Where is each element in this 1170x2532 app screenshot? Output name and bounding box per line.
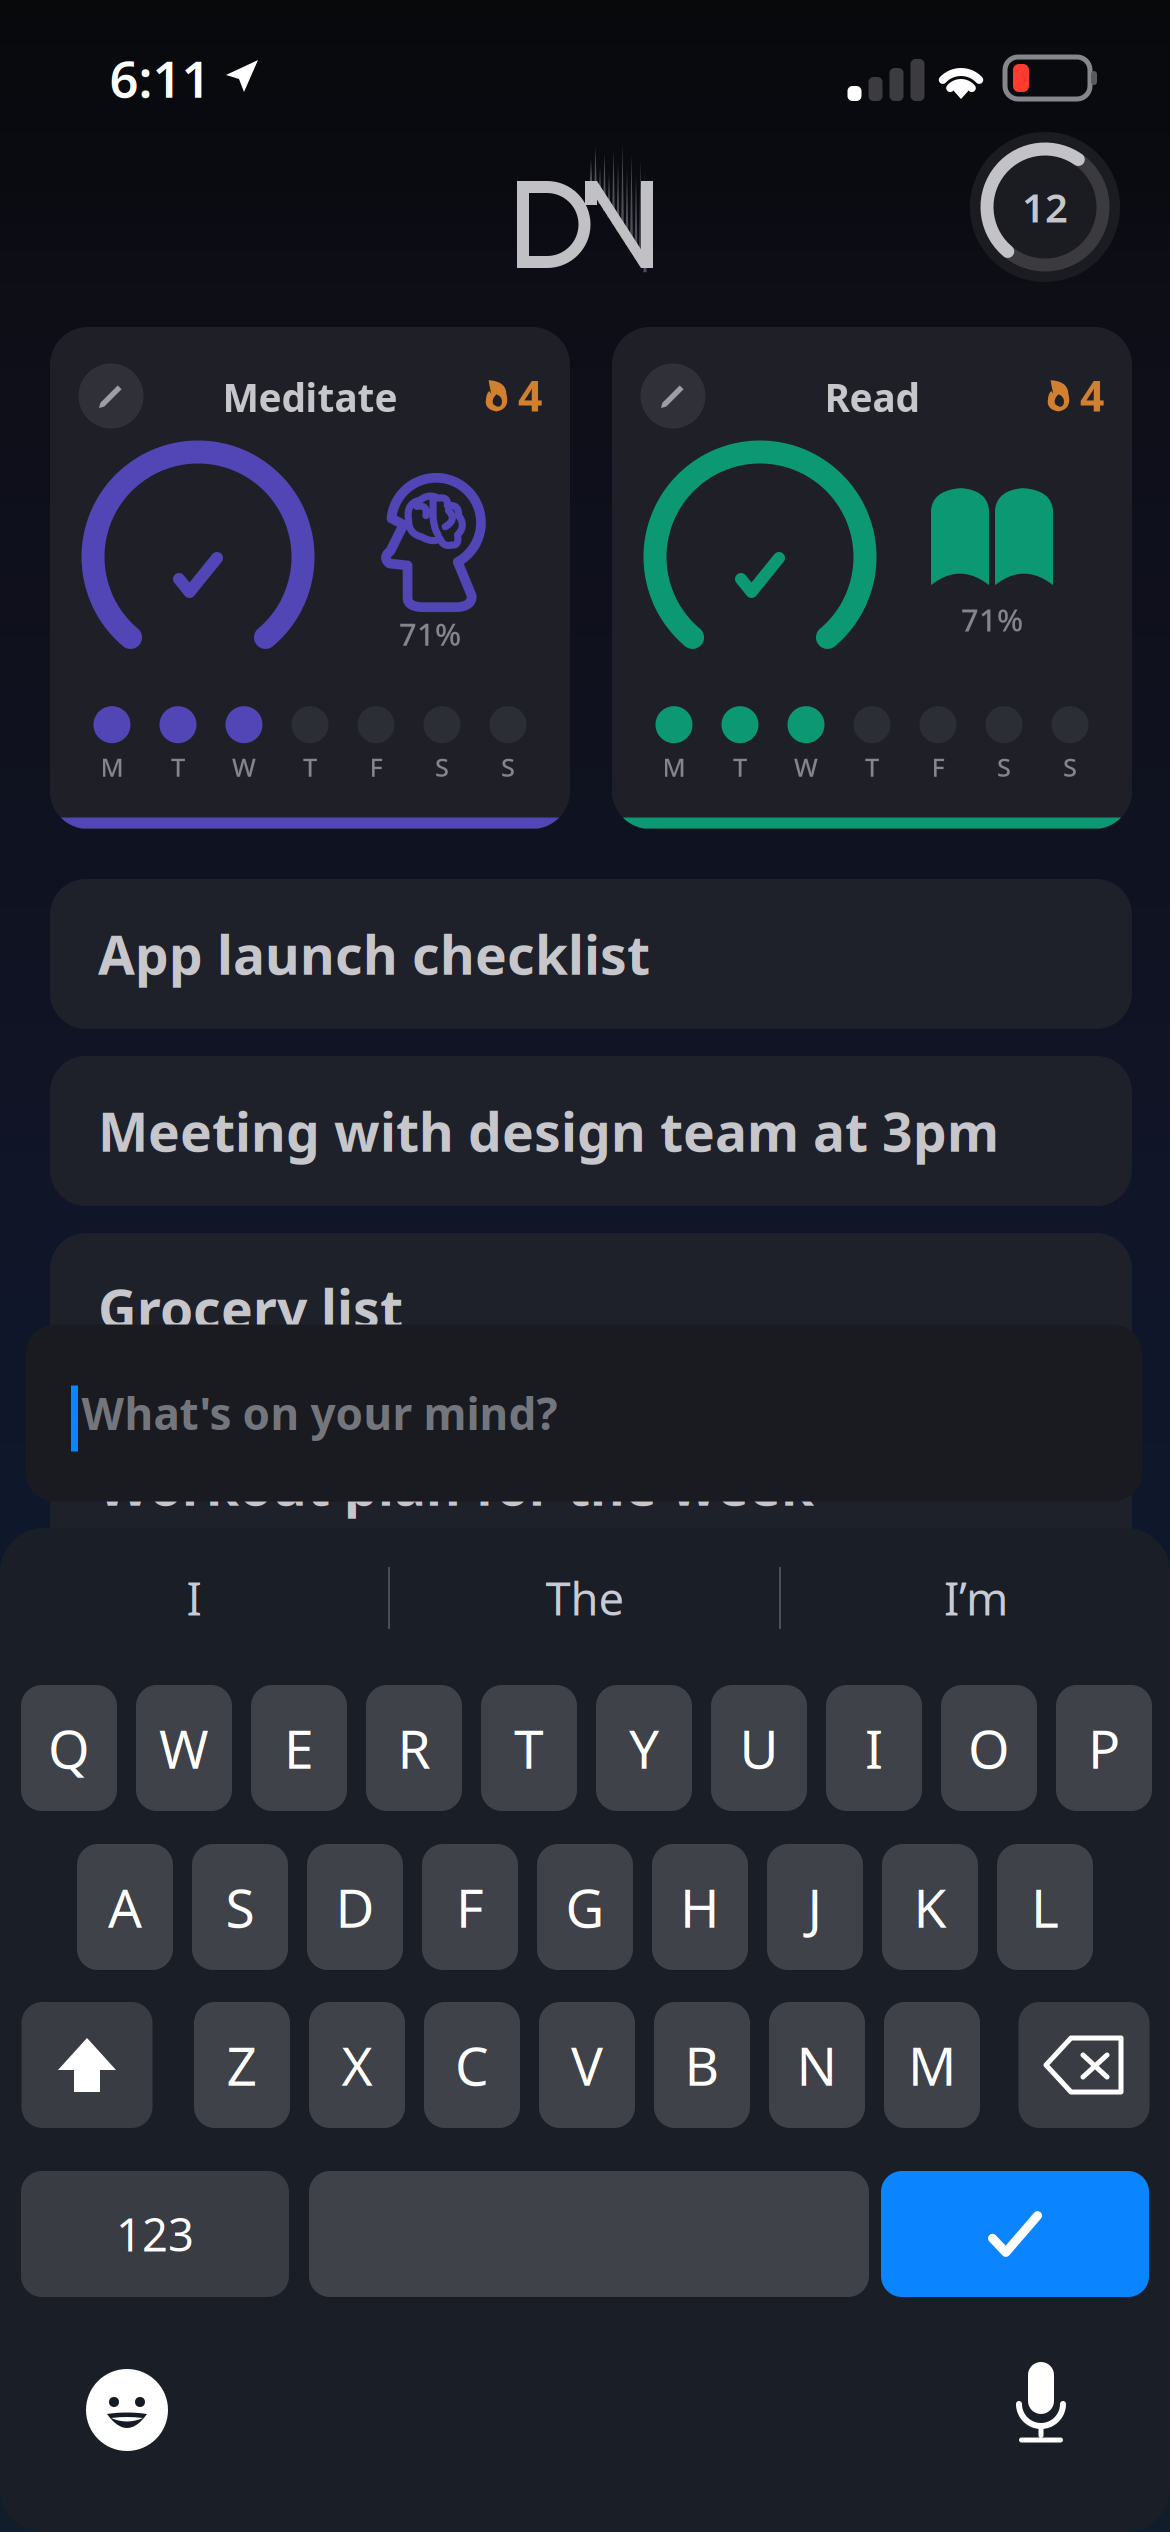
button[interactable]: B: [654, 2002, 750, 2128]
button[interactable]: I: [0, 1543, 388, 1653]
button[interactable]: O: [941, 1685, 1037, 1811]
staticText: 4: [1080, 367, 1104, 423]
button[interactable]: G: [537, 1844, 633, 1970]
button[interactable]: Daily goal 12: [970, 132, 1120, 282]
staticText: I: [865, 1713, 883, 1783]
staticText: O: [968, 1713, 1010, 1783]
button[interactable]: Meeting with design team at 3pm: [50, 1056, 1132, 1206]
staticText: Q: [48, 1713, 90, 1783]
button[interactable]: Q: [21, 1685, 117, 1811]
staticText: T: [514, 1713, 544, 1783]
button[interactable]: T: [481, 1685, 577, 1811]
staticText: Grocery list: [98, 1273, 403, 1343]
staticText: 6:11: [109, 44, 210, 112]
staticText: 71%: [961, 599, 1023, 640]
staticText: A: [108, 1872, 142, 1942]
staticText: G: [565, 1872, 604, 1942]
staticText: W: [232, 750, 256, 784]
button[interactable]: I’m: [782, 1543, 1170, 1653]
button[interactable]: Delete: [1018, 2002, 1149, 2128]
staticText: M: [908, 2030, 956, 2100]
staticText: The: [545, 1568, 624, 1628]
staticText: X: [341, 2030, 372, 2100]
staticText: T: [171, 750, 185, 784]
staticText: T: [733, 750, 747, 784]
staticText: Read: [824, 371, 919, 423]
button[interactable]: Emoji keyboard: [86, 2369, 168, 2451]
staticText: S: [997, 750, 1011, 784]
button[interactable]: S: [192, 1844, 288, 1970]
button[interactable]: C: [424, 2002, 520, 2128]
button[interactable]: Z: [194, 2002, 290, 2128]
staticText: 71%: [399, 613, 461, 654]
staticText: F: [456, 1872, 484, 1942]
staticText: Workout plan for the week: [98, 1450, 814, 1520]
button[interactable]: R: [366, 1685, 462, 1811]
button[interactable]: The: [391, 1543, 779, 1653]
button[interactable]: F: [422, 1844, 518, 1970]
button[interactable]: I: [826, 1685, 922, 1811]
button[interactable]: D: [307, 1844, 403, 1970]
staticText: C: [455, 2030, 489, 2100]
staticText: Z: [226, 2030, 257, 2100]
button[interactable]: M: [884, 2002, 980, 2128]
button[interactable]: A: [77, 1844, 173, 1970]
button[interactable]: J: [767, 1844, 863, 1970]
staticText: B: [684, 2030, 719, 2100]
button[interactable]: H: [652, 1844, 748, 1970]
staticText: P: [1088, 1713, 1120, 1783]
button[interactable]: N: [769, 2002, 865, 2128]
button[interactable]: L: [997, 1844, 1093, 1970]
button[interactable]: App launch checklist: [50, 879, 1132, 1029]
staticText: W: [159, 1713, 209, 1783]
button[interactable]: Shift: [21, 2002, 152, 2128]
staticText: S: [501, 750, 515, 784]
staticText: L: [1031, 1872, 1059, 1942]
staticText: N: [796, 2030, 837, 2100]
staticText: M: [662, 750, 685, 784]
button[interactable]: W: [136, 1685, 232, 1811]
staticText: Y: [629, 1713, 659, 1783]
button[interactable]: X: [309, 2002, 405, 2128]
staticText: 12: [1022, 180, 1068, 233]
staticText: H: [680, 1872, 720, 1942]
staticText: 4: [518, 367, 542, 423]
button[interactable]: Y: [596, 1685, 692, 1811]
staticText: T: [303, 750, 317, 784]
staticText: U: [739, 1713, 778, 1783]
button[interactable]: 123: [21, 2171, 289, 2297]
button[interactable]: Grocery list: [50, 1233, 1132, 1383]
staticText: W: [794, 750, 818, 784]
staticText: V: [571, 2030, 603, 2100]
staticText: D: [335, 1872, 374, 1942]
staticText: E: [284, 1713, 314, 1783]
button[interactable]: Edit Read: [640, 363, 705, 428]
button[interactable]: Return: [881, 2171, 1149, 2297]
staticText: What's on your mind?: [81, 1384, 557, 1442]
button[interactable]: Workout plan for the week: [50, 1410, 1132, 1560]
button[interactable]: Dictate: [1010, 2360, 1072, 2456]
button[interactable]: V: [539, 2002, 635, 2128]
staticText: T: [865, 750, 879, 784]
staticText: R: [397, 1713, 430, 1783]
staticText: S: [225, 1872, 254, 1942]
staticText: F: [931, 750, 944, 784]
staticText: Meeting with design team at 3pm: [98, 1096, 999, 1166]
staticText: I’m: [944, 1568, 1008, 1628]
staticText: I: [186, 1568, 201, 1628]
staticText: Meditate: [222, 371, 397, 423]
staticText: F: [369, 750, 382, 784]
button[interactable]: E: [251, 1685, 347, 1811]
button[interactable]: P: [1056, 1685, 1152, 1811]
staticText: S: [1063, 750, 1077, 784]
button[interactable]: K: [882, 1844, 978, 1970]
staticText: J: [807, 1872, 822, 1942]
button[interactable]: U: [711, 1685, 807, 1811]
button[interactable]: Edit Meditate: [78, 363, 143, 428]
staticText: App launch checklist: [98, 919, 650, 989]
staticText: K: [913, 1872, 946, 1942]
staticText: S: [435, 750, 449, 784]
staticText: 123: [116, 2204, 194, 2264]
staticText: M: [100, 750, 123, 784]
